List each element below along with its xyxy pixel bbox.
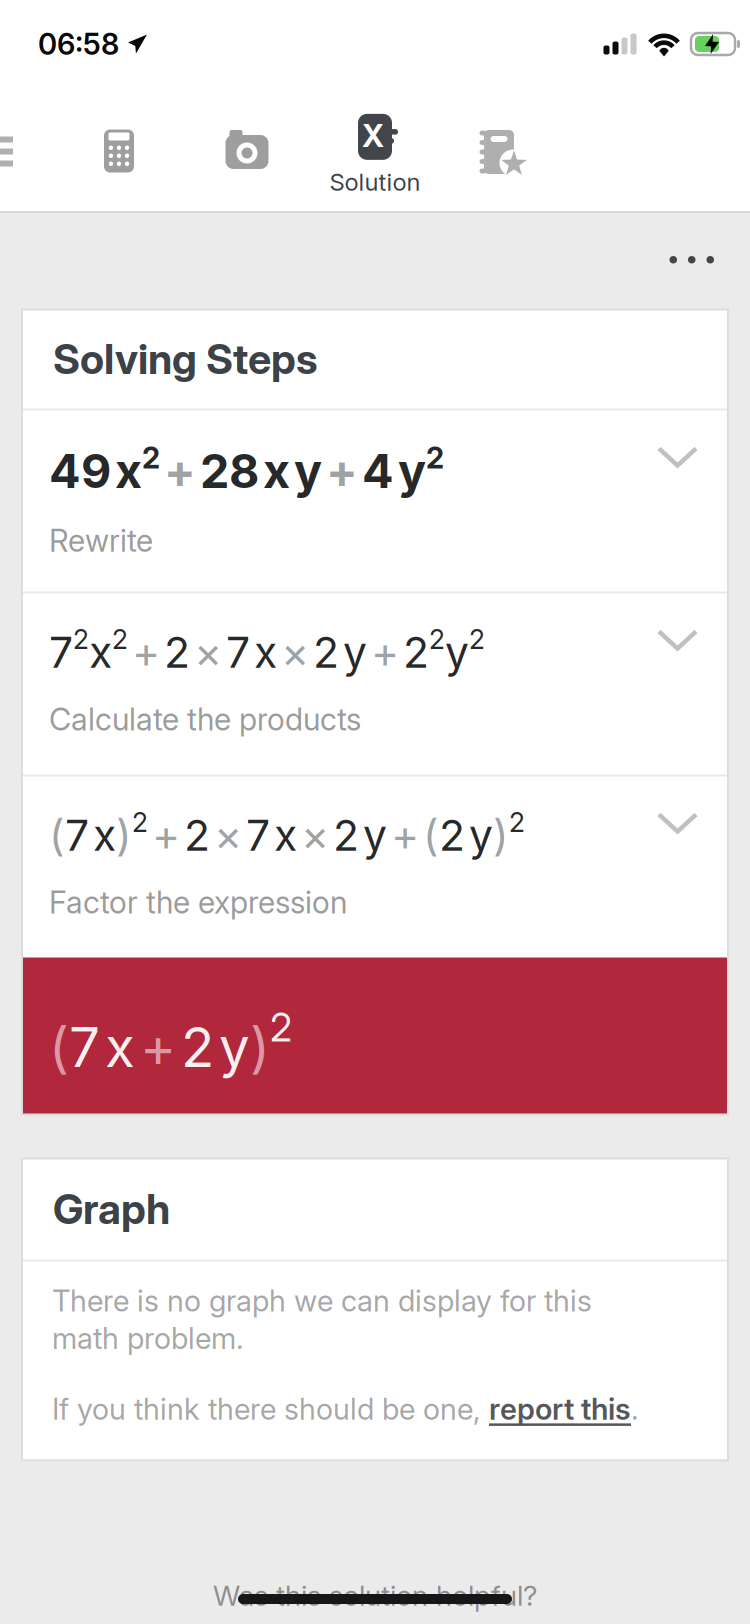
staticText: Graph — [53, 1185, 170, 1233]
staticText: 49 x2 + 28 x y + 4 y2 — [49, 440, 444, 499]
staticText: (7 x + 2 y)2 — [49, 1005, 292, 1079]
staticText: X — [362, 117, 384, 154]
staticText: . — [631, 1392, 639, 1426]
button[interactable]: 72x2 + 2 × 7 x × 2 y + 22y2 — [22, 593, 728, 774]
button[interactable]: 49 x2 + 28 x y + 4 y2 — [22, 410, 728, 591]
staticText: If you think there should be one, — [52, 1392, 489, 1426]
staticText: Factor the expression — [49, 884, 347, 920]
button[interactable]: Notebook — [478, 128, 522, 176]
button[interactable]: X — [329, 114, 420, 196]
button[interactable]: (7 x)2 + 2 × 7 x × 2 y + (2 y)2 — [22, 776, 728, 957]
staticText: 06:58 — [38, 27, 119, 61]
button[interactable]: Calculator — [97, 123, 141, 179]
staticText: Was this solution helpful? — [213, 1579, 537, 1612]
staticText: Calculate the products — [49, 701, 361, 737]
button[interactable]: Camera — [223, 130, 271, 174]
staticText: 72x2 + 2 × 7 x × 2 y + 22y2 — [49, 623, 485, 677]
staticText: Rewrite — [49, 523, 153, 559]
button[interactable]: Menu — [0, 136, 13, 167]
staticText: Solving Steps — [53, 335, 318, 383]
staticText: Solution — [329, 168, 420, 196]
button[interactable]: report this — [489, 1392, 631, 1426]
button[interactable]: More options — [669, 240, 714, 279]
staticText: There is no graph we can display for thi… — [52, 1283, 592, 1356]
staticText: (7 x)2 + 2 × 7 x × 2 y + (2 y)2 — [49, 806, 525, 860]
staticText: report this — [489, 1392, 631, 1426]
